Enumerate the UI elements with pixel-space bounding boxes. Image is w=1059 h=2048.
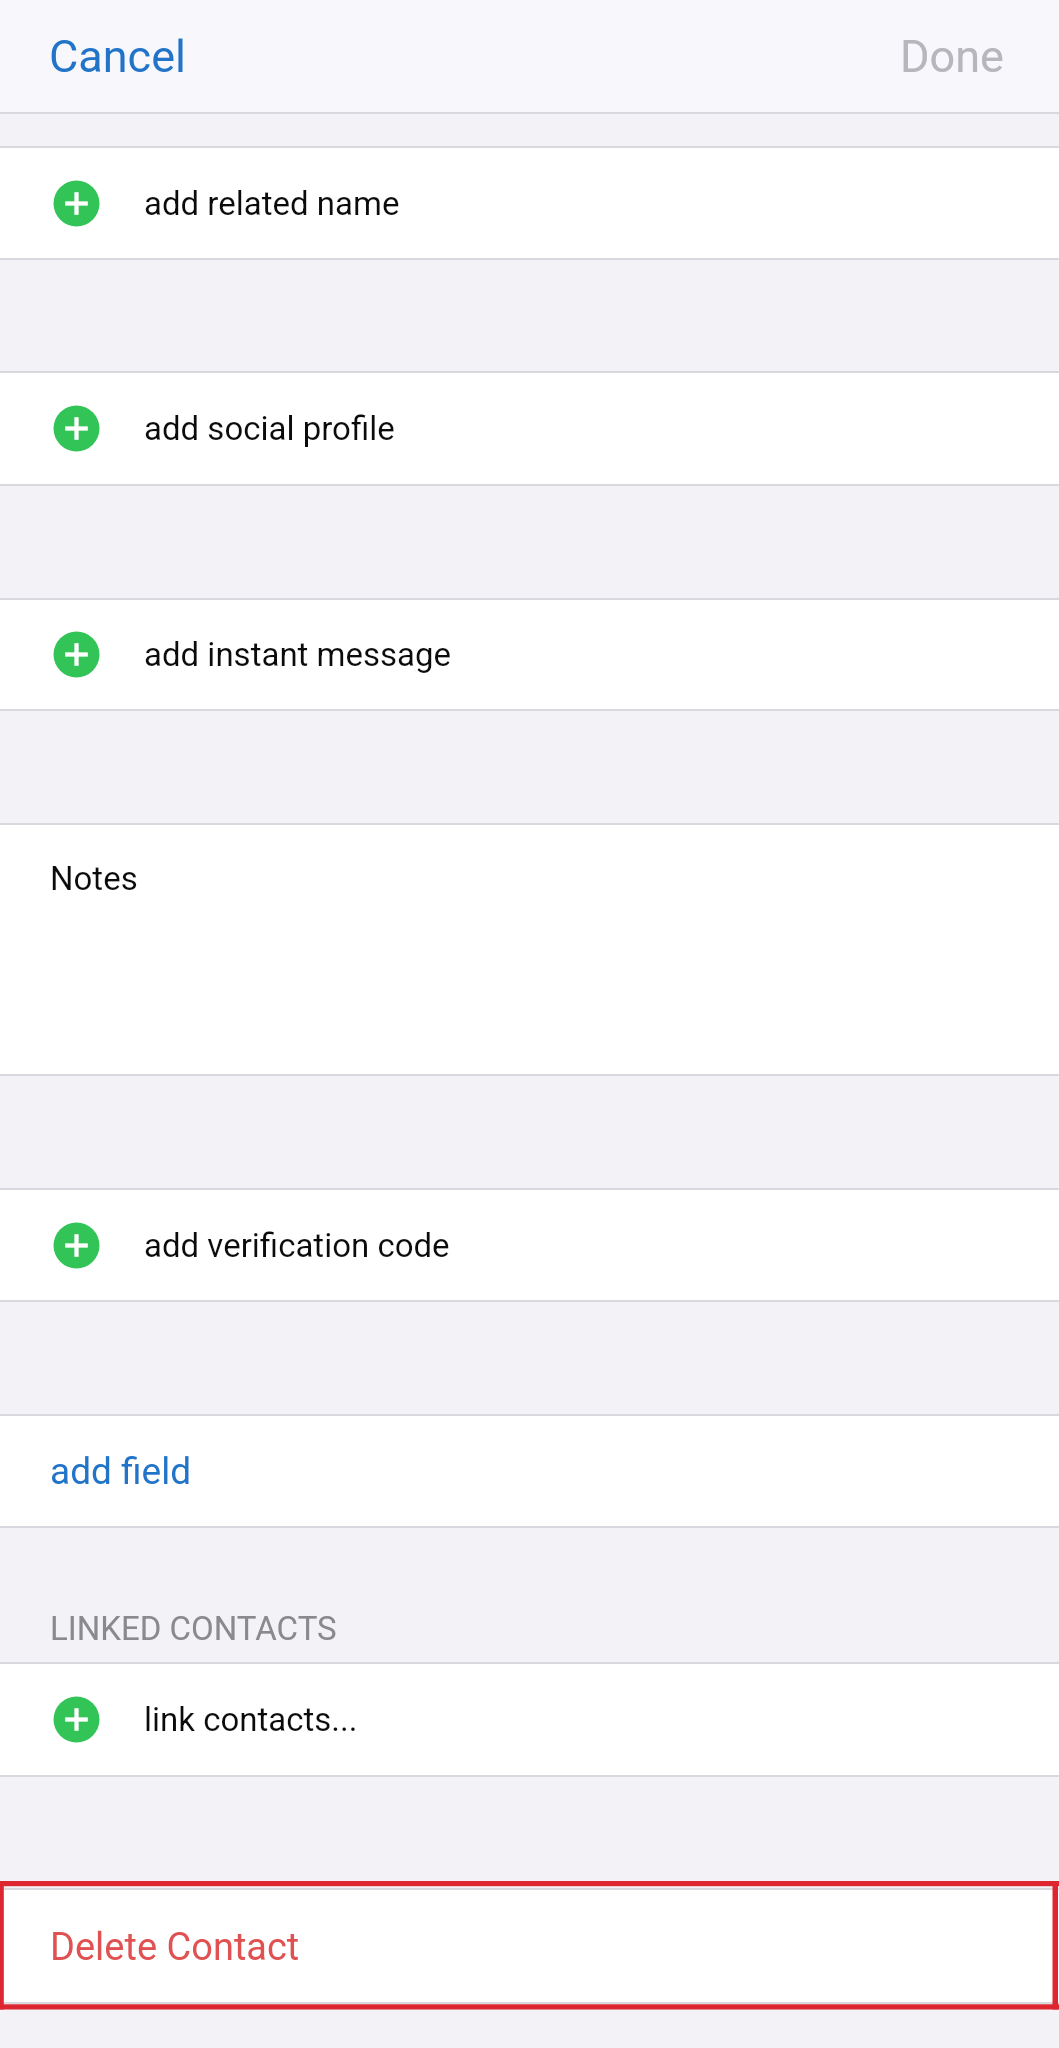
button[interactable]: add related name	[0, 148, 1059, 258]
button[interactable]: Cancel	[0, 14, 216, 99]
staticText: LINKED CONTACTS	[50, 1609, 337, 1648]
button[interactable]: add social profile	[0, 373, 1059, 484]
staticText: Delete Contact	[50, 1925, 300, 1970]
button[interactable]: link contacts...	[0, 1664, 1059, 1775]
button[interactable]: Delete Contact	[0, 1890, 1059, 2002]
staticText: add instant message	[144, 635, 452, 674]
button[interactable]: Notes	[0, 825, 1059, 1074]
staticText: link contacts...	[144, 1700, 358, 1739]
staticText: add related name	[144, 184, 400, 223]
button[interactable]: add field	[0, 1416, 1059, 1526]
staticText: Done	[900, 30, 1004, 83]
staticText: add social profile	[144, 409, 395, 448]
other: Delete Contact highlight	[0, 1881, 1059, 2048]
button[interactable]: add instant message	[0, 600, 1059, 709]
staticText: add field	[50, 1450, 192, 1493]
button[interactable]: Done	[870, 14, 1059, 99]
button[interactable]: add verification code	[0, 1190, 1059, 1300]
staticText: Cancel	[49, 30, 186, 83]
staticText: Notes	[50, 859, 138, 898]
staticText: add verification code	[144, 1226, 450, 1265]
